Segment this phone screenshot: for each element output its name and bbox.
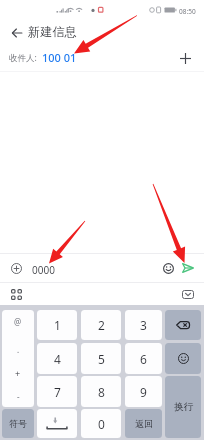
- staticText: 5: [98, 351, 105, 367]
- staticText: 9: [140, 384, 147, 400]
- staticText: 返回: [135, 418, 153, 429]
- staticText: 7: [54, 384, 61, 400]
- staticText: 新建信息: [28, 24, 77, 39]
- button[interactable]: 符号: [2, 409, 34, 438]
- staticText: 0000: [32, 263, 55, 277]
- button[interactable]: 3: [125, 310, 162, 340]
- staticText: 换行: [174, 401, 193, 413]
- staticText: 3: [140, 317, 147, 333]
- button[interactable]: Backspace: [165, 310, 201, 340]
- button[interactable]: 6: [125, 343, 162, 374]
- button[interactable]: Add attachment: [8, 260, 25, 277]
- staticText: 0: [98, 416, 105, 432]
- button[interactable]: 换行: [165, 376, 201, 438]
- staticText: .: [17, 344, 20, 355]
- button[interactable]: 2: [81, 310, 121, 340]
- button[interactable]: 5: [81, 343, 121, 374]
- staticText: 2: [98, 317, 105, 333]
- staticText: 6: [140, 351, 147, 367]
- staticText: 08:50: [179, 7, 196, 16]
- button[interactable]: 返回: [125, 409, 162, 438]
- staticText: 4: [54, 351, 61, 367]
- button[interactable]: 0: [81, 409, 121, 438]
- button[interactable]: 9: [125, 376, 162, 407]
- staticText: 符号: [9, 418, 27, 429]
- button[interactable]: 4: [37, 343, 77, 374]
- button[interactable]: 7: [37, 376, 77, 407]
- button[interactable]: 8: [81, 376, 121, 407]
- button[interactable]: Add recipient: [176, 49, 194, 67]
- staticText: 1: [54, 317, 61, 333]
- button[interactable]: Emoji: [160, 260, 177, 277]
- staticText: 100 01: [42, 50, 77, 65]
- staticText: @: [14, 316, 22, 327]
- button[interactable]: Send: [179, 259, 197, 277]
- button[interactable]: 1: [37, 310, 77, 340]
- button[interactable]: @: [2, 310, 34, 407]
- staticText: 收件人:: [9, 52, 37, 64]
- staticText: +: [15, 367, 21, 379]
- button[interactable]: Space: [37, 409, 77, 438]
- staticText: 8: [98, 384, 105, 400]
- button[interactable]: Emoji keyboard: [165, 343, 201, 374]
- button[interactable]: Input methods: [8, 286, 25, 303]
- button[interactable]: Back: [8, 24, 25, 41]
- button[interactable]: Hide keyboard: [179, 286, 196, 303]
- staticText: -: [17, 391, 20, 401]
